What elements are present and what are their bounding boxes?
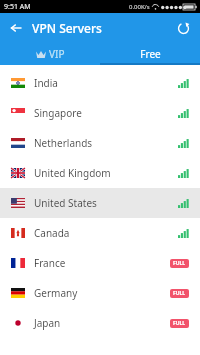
button[interactable]: Refresh xyxy=(172,17,194,39)
staticText: Singapore xyxy=(34,106,82,120)
staticText: France xyxy=(34,256,66,270)
button[interactable]: France xyxy=(0,248,200,278)
staticText: United States xyxy=(34,196,97,210)
button[interactable]: United States xyxy=(0,188,200,218)
button[interactable]: Canada xyxy=(0,218,200,248)
staticText: VIP xyxy=(49,47,65,61)
button[interactable]: Singapore xyxy=(0,98,200,128)
button[interactable]: Japan xyxy=(0,308,200,338)
staticText: FULL xyxy=(173,320,186,327)
staticText: FULL xyxy=(173,290,186,297)
staticText: Free xyxy=(140,47,161,61)
button[interactable]: Free xyxy=(100,42,200,65)
button[interactable]: VIP xyxy=(0,42,100,65)
staticText: FULL xyxy=(173,260,186,267)
button[interactable]: Germany xyxy=(0,278,200,308)
staticText: United Kingdom xyxy=(34,166,111,180)
staticText: 9:51 AM xyxy=(4,2,31,12)
button[interactable]: Netherlands xyxy=(0,128,200,158)
staticText: Netherlands xyxy=(34,136,93,150)
staticText: Germany xyxy=(34,286,78,300)
staticText: Japan xyxy=(34,316,61,330)
button[interactable]: India xyxy=(0,68,200,98)
staticText: Canada xyxy=(34,226,70,240)
staticText: India xyxy=(34,76,58,90)
button[interactable]: Back xyxy=(5,17,27,39)
staticText: 0.00K/s xyxy=(129,3,150,11)
button[interactable]: United Kingdom xyxy=(0,158,200,188)
staticText: VPN Servers xyxy=(32,20,102,36)
